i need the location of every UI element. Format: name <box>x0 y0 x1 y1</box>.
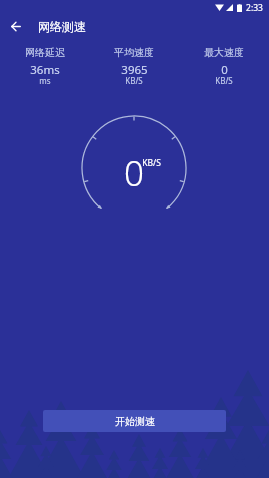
staticText: 2:33 <box>246 2 263 14</box>
staticText: KB/S <box>215 75 233 86</box>
staticText: 36ms <box>30 62 60 78</box>
button[interactable]: 开始测速 <box>43 410 226 432</box>
staticText: KB/S <box>125 75 143 86</box>
staticText: 3965 <box>121 62 148 78</box>
staticText: 开始测速 <box>115 415 155 428</box>
staticText: ms <box>39 75 51 86</box>
staticText: 网络延迟 <box>25 46 65 59</box>
staticText: 最大速度 <box>204 46 244 59</box>
staticText: KB/S <box>142 157 161 169</box>
staticText: 网络测速 <box>38 19 86 34</box>
staticText: 0 <box>221 62 228 78</box>
staticText: 0 <box>124 149 144 197</box>
staticText: 平均速度 <box>114 46 154 59</box>
button[interactable]: Back <box>4 15 28 38</box>
